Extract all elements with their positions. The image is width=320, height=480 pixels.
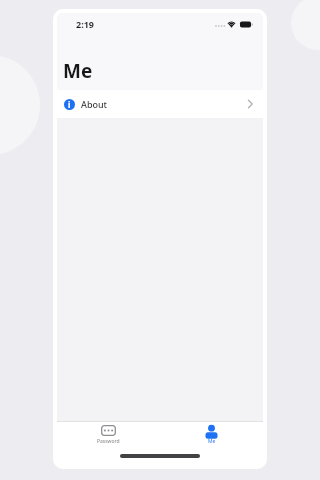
button[interactable]: Password bbox=[57, 425, 160, 445]
button[interactable]: Me bbox=[160, 425, 263, 445]
staticText: Me bbox=[63, 58, 93, 84]
staticText: About bbox=[81, 98, 108, 110]
staticText: 2:19 bbox=[76, 18, 94, 30]
staticText: Password bbox=[97, 438, 120, 445]
staticText: Me bbox=[208, 438, 216, 445]
staticText: i bbox=[68, 99, 71, 110]
button[interactable]: i bbox=[57, 90, 263, 118]
